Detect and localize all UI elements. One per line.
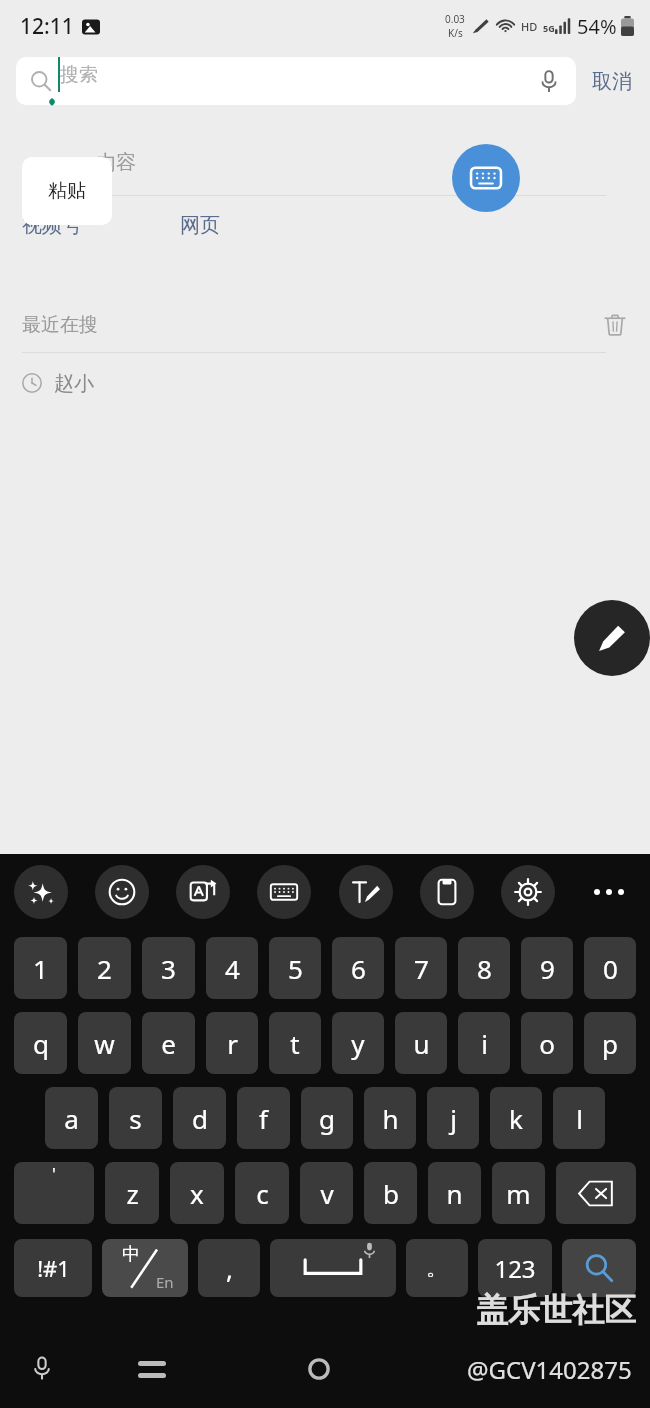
- staticText: 0: [603, 951, 618, 986]
- button[interactable]: Clear search history: [602, 312, 628, 338]
- staticText: !#1: [37, 1253, 70, 1283]
- button[interactable]: u: [395, 1012, 447, 1074]
- button[interactable]: Clipboard: [420, 865, 474, 919]
- button[interactable]: f: [237, 1087, 290, 1149]
- button[interactable]: 搜索: [16, 57, 576, 105]
- button[interactable]: Voice search: [536, 68, 562, 94]
- staticText: 搜索: [60, 63, 98, 87]
- button[interactable]: 2: [78, 937, 131, 999]
- staticText: s: [129, 1101, 142, 1136]
- button[interactable]: Home: [299, 1349, 339, 1389]
- button[interactable]: Space: [270, 1239, 396, 1297]
- staticText: 3: [161, 951, 176, 986]
- button[interactable]: k: [490, 1087, 542, 1149]
- button[interactable]: c: [235, 1162, 289, 1224]
- staticText: 赵小: [54, 371, 94, 396]
- staticText: i: [481, 1026, 488, 1061]
- button[interactable]: l: [553, 1087, 605, 1149]
- button[interactable]: Settings: [501, 865, 555, 919]
- button[interactable]: d: [173, 1087, 226, 1149]
- staticText: b: [383, 1176, 399, 1211]
- staticText: e: [161, 1026, 176, 1061]
- button[interactable]: s: [109, 1087, 162, 1149]
- button[interactable]: Voice input: [22, 1349, 62, 1389]
- button[interactable]: Switch language: [102, 1239, 188, 1297]
- button[interactable]: a: [45, 1087, 98, 1149]
- button[interactable]: 粘贴: [22, 157, 112, 225]
- staticText: h: [382, 1101, 399, 1136]
- staticText: f: [259, 1101, 268, 1136]
- button[interactable]: 1: [14, 937, 67, 999]
- button[interactable]: e: [142, 1012, 195, 1074]
- button[interactable]: 赵小: [0, 353, 650, 413]
- staticText: a: [64, 1101, 79, 1136]
- button[interactable]: More options: [582, 865, 636, 919]
- button[interactable]: 。: [406, 1239, 468, 1297]
- staticText: 12:11: [20, 12, 74, 41]
- button[interactable]: i: [458, 1012, 510, 1074]
- button[interactable]: ': [14, 1162, 94, 1224]
- button[interactable]: ,: [198, 1239, 260, 1297]
- button[interactable]: h: [364, 1087, 416, 1149]
- staticText: 5G: [543, 22, 555, 34]
- button[interactable]: Translate: [176, 865, 230, 919]
- button[interactable]: Recents: [132, 1349, 172, 1389]
- staticText: 4: [225, 951, 240, 986]
- button[interactable]: AI suggestions: [14, 865, 68, 919]
- button[interactable]: 9: [521, 937, 573, 999]
- staticText: w: [94, 1026, 115, 1061]
- staticText: 54%: [577, 13, 617, 40]
- button[interactable]: 视频号: [22, 207, 82, 244]
- button[interactable]: !#1: [14, 1239, 92, 1297]
- button[interactable]: x: [170, 1162, 224, 1224]
- button[interactable]: 4: [206, 937, 258, 999]
- button[interactable]: 3: [142, 937, 195, 999]
- button[interactable]: Search: [562, 1239, 636, 1297]
- button[interactable]: b: [364, 1162, 417, 1224]
- button[interactable]: z: [105, 1162, 159, 1224]
- button[interactable]: m: [492, 1162, 545, 1224]
- staticText: t: [290, 1026, 300, 1061]
- staticText: p: [602, 1026, 618, 1061]
- staticText: ,: [226, 1251, 233, 1286]
- button[interactable]: g: [301, 1087, 353, 1149]
- staticText: l: [576, 1101, 583, 1136]
- button[interactable]: Keyboard layout: [257, 865, 311, 919]
- staticText: 8: [477, 951, 492, 986]
- button[interactable]: Emoji: [95, 865, 149, 919]
- staticText: 中: [122, 1243, 140, 1266]
- button[interactable]: 取消: [590, 63, 634, 100]
- button[interactable]: n: [428, 1162, 481, 1224]
- staticText: d: [192, 1101, 208, 1136]
- staticText: o: [539, 1026, 555, 1061]
- button[interactable]: Handwriting: [339, 865, 393, 919]
- button[interactable]: Backspace: [556, 1162, 636, 1224]
- button[interactable]: o: [521, 1012, 573, 1074]
- staticText: 取消: [592, 69, 632, 94]
- button[interactable]: q: [14, 1012, 67, 1074]
- button[interactable]: 5: [269, 937, 321, 999]
- staticText: n: [446, 1176, 463, 1211]
- button[interactable]: t: [269, 1012, 321, 1074]
- button[interactable]: 0: [584, 937, 636, 999]
- staticText: 内容: [96, 150, 136, 175]
- button[interactable]: v: [300, 1162, 353, 1224]
- staticText: r: [227, 1026, 238, 1061]
- button[interactable]: 8: [458, 937, 510, 999]
- staticText: u: [413, 1026, 430, 1061]
- button[interactable]: 网页: [180, 207, 220, 244]
- staticText: k: [509, 1101, 523, 1136]
- button[interactable]: 123: [478, 1239, 552, 1297]
- staticText: x: [190, 1176, 204, 1211]
- button[interactable]: 6: [332, 937, 384, 999]
- button[interactable]: p: [584, 1012, 636, 1074]
- button[interactable]: Compose: [574, 600, 650, 676]
- button[interactable]: Show keyboard: [452, 144, 520, 212]
- staticText: 5: [288, 951, 303, 986]
- button[interactable]: y: [332, 1012, 384, 1074]
- button[interactable]: r: [206, 1012, 258, 1074]
- button[interactable]: j: [427, 1087, 479, 1149]
- button[interactable]: w: [78, 1012, 131, 1074]
- staticText: HD: [521, 19, 538, 34]
- button[interactable]: 7: [395, 937, 447, 999]
